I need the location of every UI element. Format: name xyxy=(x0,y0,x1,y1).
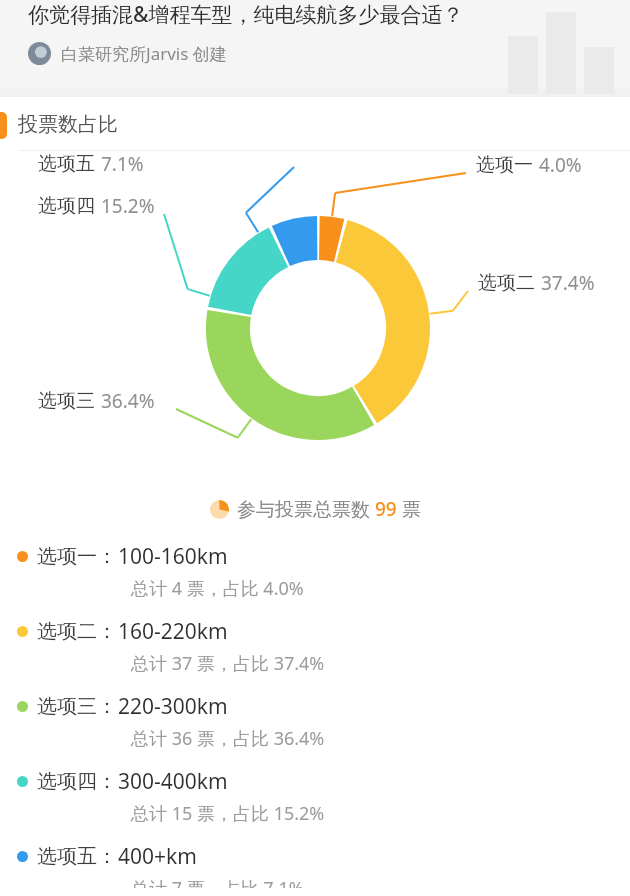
staticText: 白菜研究所Jarvis 创建 xyxy=(61,42,227,65)
staticText: 选项五： xyxy=(37,844,117,869)
staticText: 总计 36 票，占比 36.4% xyxy=(131,726,325,751)
button[interactable]: 选项一： xyxy=(0,534,630,609)
staticText: 选项二 xyxy=(478,271,535,295)
staticText: 选项一： xyxy=(37,544,117,569)
staticText: 选项五 xyxy=(38,152,95,176)
staticText: 总计 37 票，占比 37.4% xyxy=(131,651,325,676)
staticText: 400+km xyxy=(118,842,197,871)
staticText: 99 xyxy=(375,496,397,522)
staticText: 15.2% xyxy=(101,193,155,219)
button[interactable]: 选项四： xyxy=(0,759,630,834)
staticText: 你觉得插混&增程车型，纯电续航多少最合适？ xyxy=(28,0,464,29)
button[interactable]: 选项三： xyxy=(0,684,630,759)
staticText: 36.4% xyxy=(101,388,155,414)
staticText: 100-160km xyxy=(118,542,228,571)
staticText: 160-220km xyxy=(118,617,228,646)
staticText: 37.4% xyxy=(541,270,595,296)
staticText: 7.1% xyxy=(101,151,144,177)
staticText: 4.0% xyxy=(539,152,582,178)
staticText: 选项三 xyxy=(38,389,95,413)
staticText: 300-400km xyxy=(118,767,228,796)
staticText: 选项四 xyxy=(38,194,95,218)
staticText: 选项三： xyxy=(37,694,117,719)
staticText: 选项二： xyxy=(37,619,117,644)
staticText: 总计 4 票，占比 4.0% xyxy=(131,576,304,601)
staticText: 投票数占比 xyxy=(18,112,118,137)
button[interactable]: 你觉得插混&增程车型，纯电续航多少最合适？ xyxy=(0,0,630,88)
other: Total votes xyxy=(210,500,229,519)
staticText: 参与投票总票数 xyxy=(237,496,375,522)
staticText: 选项一 xyxy=(476,153,533,177)
staticText: 总计 7 票，占比 7.1% xyxy=(131,876,304,888)
staticText: 总计 15 票，占比 15.2% xyxy=(131,801,325,826)
button[interactable]: 选项五： xyxy=(0,834,630,896)
staticText: 220-300km xyxy=(118,692,228,721)
button[interactable]: 选项二： xyxy=(0,609,630,684)
staticText: 票 xyxy=(397,496,421,522)
staticText: 选项四： xyxy=(37,769,117,794)
